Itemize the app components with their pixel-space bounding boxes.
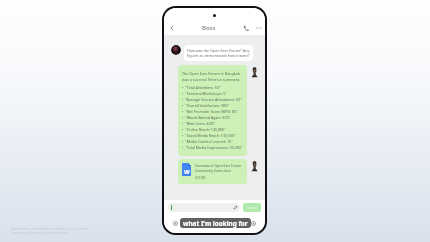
staticText: Send <box>247 205 257 211</box>
staticText: what I'm looking for <box>183 219 248 228</box>
button[interactable]: The Open Ears Forum in Bangkok was a suc… <box>178 65 247 156</box>
staticText: Features are subject to change without n… <box>11 231 68 235</box>
button[interactable]: W <box>178 159 247 184</box>
staticText: How was the Open Ears Forum? Any figures… <box>187 48 250 58</box>
other: Emoji <box>233 205 238 210</box>
staticText: Product feature, functionality and avail… <box>11 227 90 231</box>
button[interactable]: Video call <box>239 21 252 35</box>
staticText: • "Total Attendees: 50" • "Sessions/Work… <box>182 85 243 150</box>
button[interactable]: More options <box>252 21 265 35</box>
staticText: W <box>184 168 190 176</box>
staticText: Boss <box>202 24 216 32</box>
staticText: The Open Ears Forum in Bangkok was a suc… <box>182 71 243 82</box>
staticText: Overview of Open Ears Forum Community Ev… <box>195 163 243 173</box>
button[interactable]: Back <box>164 21 179 35</box>
button[interactable]: Emoji <box>168 203 240 212</box>
staticText: 472 KB <box>195 176 206 180</box>
button[interactable]: Send <box>243 203 261 212</box>
button[interactable]: How was the Open Ears Forum? Any figures… <box>184 45 253 61</box>
